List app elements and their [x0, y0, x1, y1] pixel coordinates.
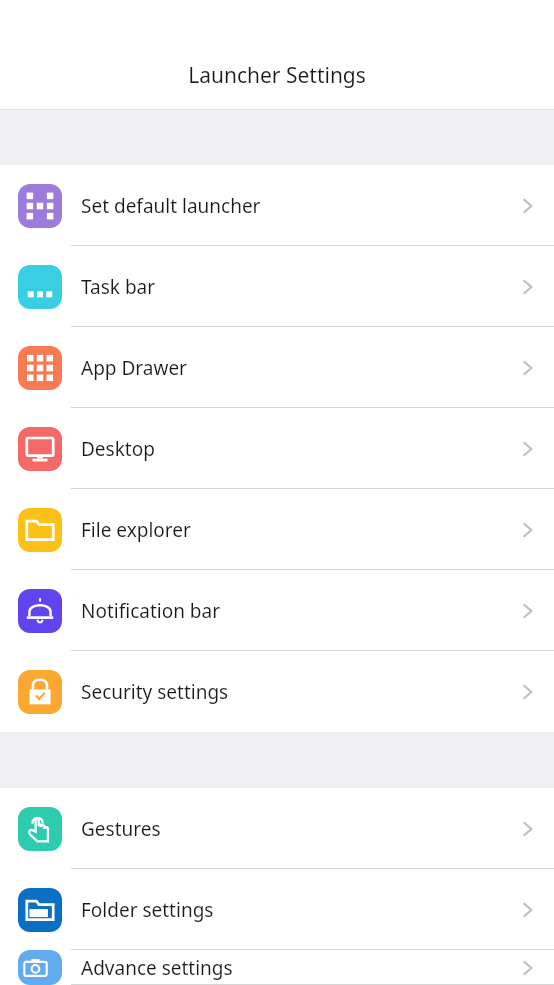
button[interactable]: Folder settings	[0, 869, 554, 950]
staticText: Advance settings	[81, 955, 233, 981]
other: Security settings	[510, 675, 544, 709]
other: App Drawer	[510, 351, 544, 385]
button[interactable]: Advance settings	[0, 950, 554, 985]
other: Gestures	[510, 812, 544, 846]
staticText: Security settings	[81, 679, 229, 705]
staticText: Task bar	[81, 274, 156, 300]
staticText: Gestures	[81, 816, 161, 842]
button[interactable]: Notification bar	[0, 570, 554, 651]
other: Set default launcher	[510, 189, 544, 223]
other: Advance settings	[510, 951, 544, 985]
button[interactable]: App Drawer	[0, 327, 554, 408]
other: Task bar	[510, 270, 544, 304]
staticText: Notification bar	[81, 598, 221, 624]
button[interactable]: File explorer	[0, 489, 554, 570]
other: Folder settings	[510, 893, 544, 927]
button[interactable]: Task bar	[0, 246, 554, 327]
other: Desktop	[510, 432, 544, 466]
staticText: Desktop	[81, 436, 155, 462]
staticText: App Drawer	[81, 355, 187, 381]
button[interactable]: Set default launcher	[0, 165, 554, 246]
other: File explorer	[510, 513, 544, 547]
staticText: Folder settings	[81, 897, 214, 923]
button[interactable]: Security settings	[0, 651, 554, 732]
other: Notification bar	[510, 594, 544, 628]
button[interactable]: Desktop	[0, 408, 554, 489]
staticText: Set default launcher	[81, 193, 261, 219]
staticText: Launcher Settings	[0, 61, 554, 90]
staticText: File explorer	[81, 517, 191, 543]
button[interactable]: Gestures	[0, 788, 554, 869]
